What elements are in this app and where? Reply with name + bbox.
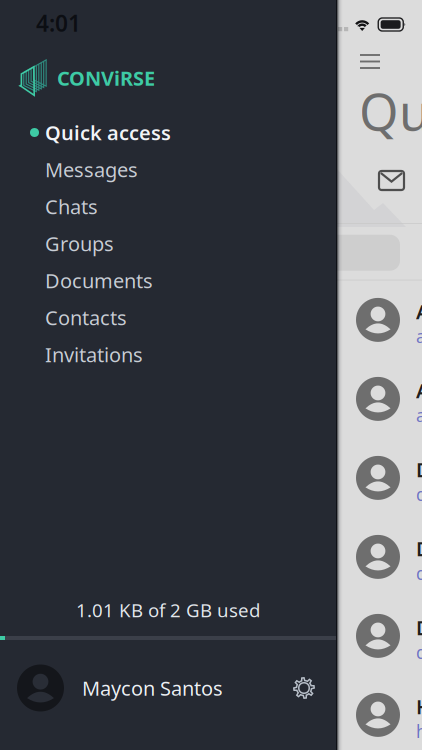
staticText: Messages bbox=[45, 156, 138, 183]
button[interactable]: Chats bbox=[0, 188, 336, 225]
staticText: 1.01 KB of 2 GB used bbox=[76, 598, 260, 622]
staticText: Documents bbox=[45, 267, 153, 294]
button[interactable]: Dmitri Volkov bbox=[0, 596, 422, 675]
button[interactable]: Messages bbox=[370, 162, 413, 199]
staticText: diana@convirse.io bbox=[416, 483, 422, 506]
button[interactable]: Documents bbox=[0, 262, 336, 299]
button[interactable]: Search bbox=[10, 235, 400, 271]
staticText: Chats bbox=[45, 193, 98, 220]
button[interactable]: Invitations bbox=[0, 336, 336, 373]
button[interactable]: Arthur Keane bbox=[0, 359, 422, 438]
button[interactable]: Hannah Reid bbox=[0, 675, 422, 750]
button[interactable]: Contacts bbox=[0, 299, 336, 336]
staticText: 4:01 bbox=[36, 8, 81, 38]
staticText: Contacts bbox=[45, 304, 127, 331]
staticText: Quick access bbox=[45, 119, 171, 146]
button[interactable]: Diana Prince bbox=[0, 438, 422, 517]
staticText: Hannah Reid bbox=[416, 693, 422, 720]
staticText: Groups bbox=[45, 230, 114, 257]
staticText: Search bbox=[48, 238, 120, 268]
button[interactable]: Derek Lowe bbox=[0, 517, 422, 596]
staticText: alice@convirse.io bbox=[416, 325, 422, 348]
button[interactable]: Menu bbox=[350, 44, 390, 79]
button[interactable]: Maycon Santos bbox=[0, 658, 336, 718]
staticText: Arthur Keane bbox=[416, 377, 422, 404]
button[interactable]: Quick access bbox=[0, 114, 336, 151]
staticText: dmitri@convirse.io bbox=[416, 641, 422, 664]
staticText: Derek Lowe bbox=[416, 535, 422, 562]
staticText: Maycon Santos bbox=[82, 675, 223, 701]
button[interactable]: Messages bbox=[0, 151, 336, 188]
staticText: derek@convirse.io bbox=[416, 562, 422, 585]
staticText: hannah@convirse.io bbox=[416, 720, 422, 743]
staticText: Dmitri Volkov bbox=[416, 614, 422, 641]
staticText: Diana Prince bbox=[416, 456, 422, 483]
button[interactable]: Alice Johnson bbox=[0, 280, 422, 359]
button[interactable]: Groups bbox=[0, 225, 336, 262]
staticText: arthur@convirse.io bbox=[416, 404, 422, 427]
staticText: Alice Johnson bbox=[416, 298, 422, 325]
staticText: Invitations bbox=[45, 341, 143, 368]
staticText: Quick access bbox=[359, 77, 422, 145]
staticText: CONViRSE bbox=[57, 65, 155, 91]
